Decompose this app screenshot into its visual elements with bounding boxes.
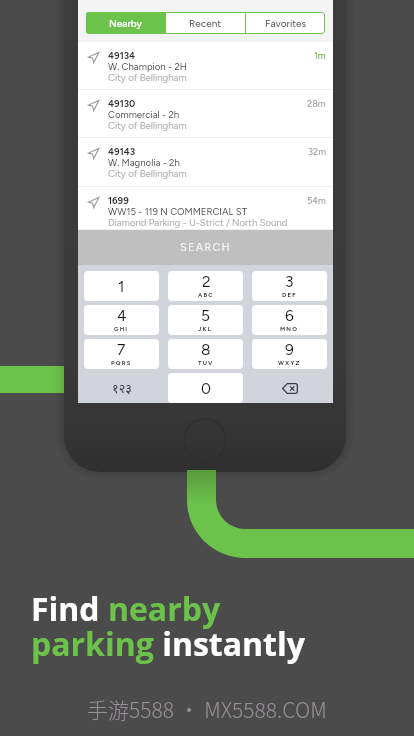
- staticText: DEF: [282, 291, 297, 298]
- button[interactable]: 0: [168, 373, 243, 403]
- button[interactable]: Delete: [252, 373, 327, 403]
- staticText: 49134: [108, 50, 136, 61]
- button[interactable]: 3: [252, 271, 327, 301]
- staticText: City of Bellingham: [108, 72, 187, 83]
- staticText: Recent: [189, 17, 222, 29]
- staticText: TUV: [198, 359, 214, 366]
- button[interactable]: 49130: [78, 90, 333, 138]
- button[interactable]: 49143: [78, 138, 333, 187]
- staticText: 9: [285, 340, 294, 359]
- staticText: parking instantly: [31, 622, 305, 666]
- button[interactable]: 2: [168, 271, 243, 301]
- staticText: SEARCH: [180, 241, 231, 254]
- staticText: 1m: [314, 50, 326, 61]
- button[interactable]: 8: [168, 339, 243, 369]
- staticText: १२३: [112, 380, 132, 397]
- staticText: 49130: [108, 98, 136, 109]
- staticText: Favorites: [265, 17, 307, 29]
- staticText: W. Champion - 2H: [108, 61, 188, 72]
- staticText: City of Bellingham: [108, 168, 187, 179]
- button[interactable]: 4: [84, 305, 159, 335]
- button[interactable]: 6: [252, 305, 327, 335]
- staticText: PQRS: [111, 359, 132, 366]
- button[interactable]: Recent: [166, 12, 245, 34]
- staticText: 28m: [307, 98, 326, 109]
- button[interactable]: 7: [84, 339, 159, 369]
- staticText: MNO: [280, 325, 299, 332]
- button[interactable]: 9: [252, 339, 327, 369]
- staticText: 49143: [108, 146, 136, 157]
- staticText: 1: [118, 277, 125, 296]
- staticText: Find nearby: [31, 587, 221, 631]
- staticText: W. Magnolia - 2h: [108, 157, 180, 168]
- staticText: JKL: [198, 325, 213, 332]
- button[interactable]: १२३: [84, 373, 159, 403]
- button[interactable]: 1699: [78, 187, 333, 230]
- staticText: 6: [285, 306, 294, 325]
- staticText: 32m: [308, 146, 326, 157]
- staticText: 54m: [307, 195, 326, 206]
- staticText: 手游5588 • MX5588.COM: [87, 694, 327, 724]
- staticText: Commercial - 2h: [108, 109, 180, 120]
- staticText: Nearby: [109, 17, 143, 29]
- staticText: 4: [117, 306, 127, 325]
- staticText: 5: [201, 306, 210, 325]
- staticText: City of Bellingham: [108, 120, 187, 131]
- staticText: 8: [201, 340, 211, 359]
- staticText: 0: [201, 379, 211, 398]
- staticText: 2: [202, 272, 211, 291]
- staticText: 7: [117, 340, 126, 359]
- button[interactable]: 49134: [78, 42, 333, 90]
- staticText: GHI: [114, 325, 129, 332]
- button[interactable]: 5: [168, 305, 243, 335]
- button[interactable]: 1: [84, 271, 159, 301]
- staticText: ABC: [198, 291, 214, 298]
- button[interactable]: SEARCH: [78, 230, 333, 265]
- staticText: 1699: [108, 195, 129, 206]
- button[interactable]: Favorites: [246, 12, 325, 34]
- staticText: 3: [285, 272, 294, 291]
- staticText: WXYZ: [278, 359, 301, 366]
- staticText: Diamond Parking - U-Strict / North Sound: [108, 217, 288, 228]
- button[interactable]: Nearby: [86, 12, 165, 34]
- staticText: WW15 - 119 N COMMERCIAL ST: [108, 206, 247, 217]
